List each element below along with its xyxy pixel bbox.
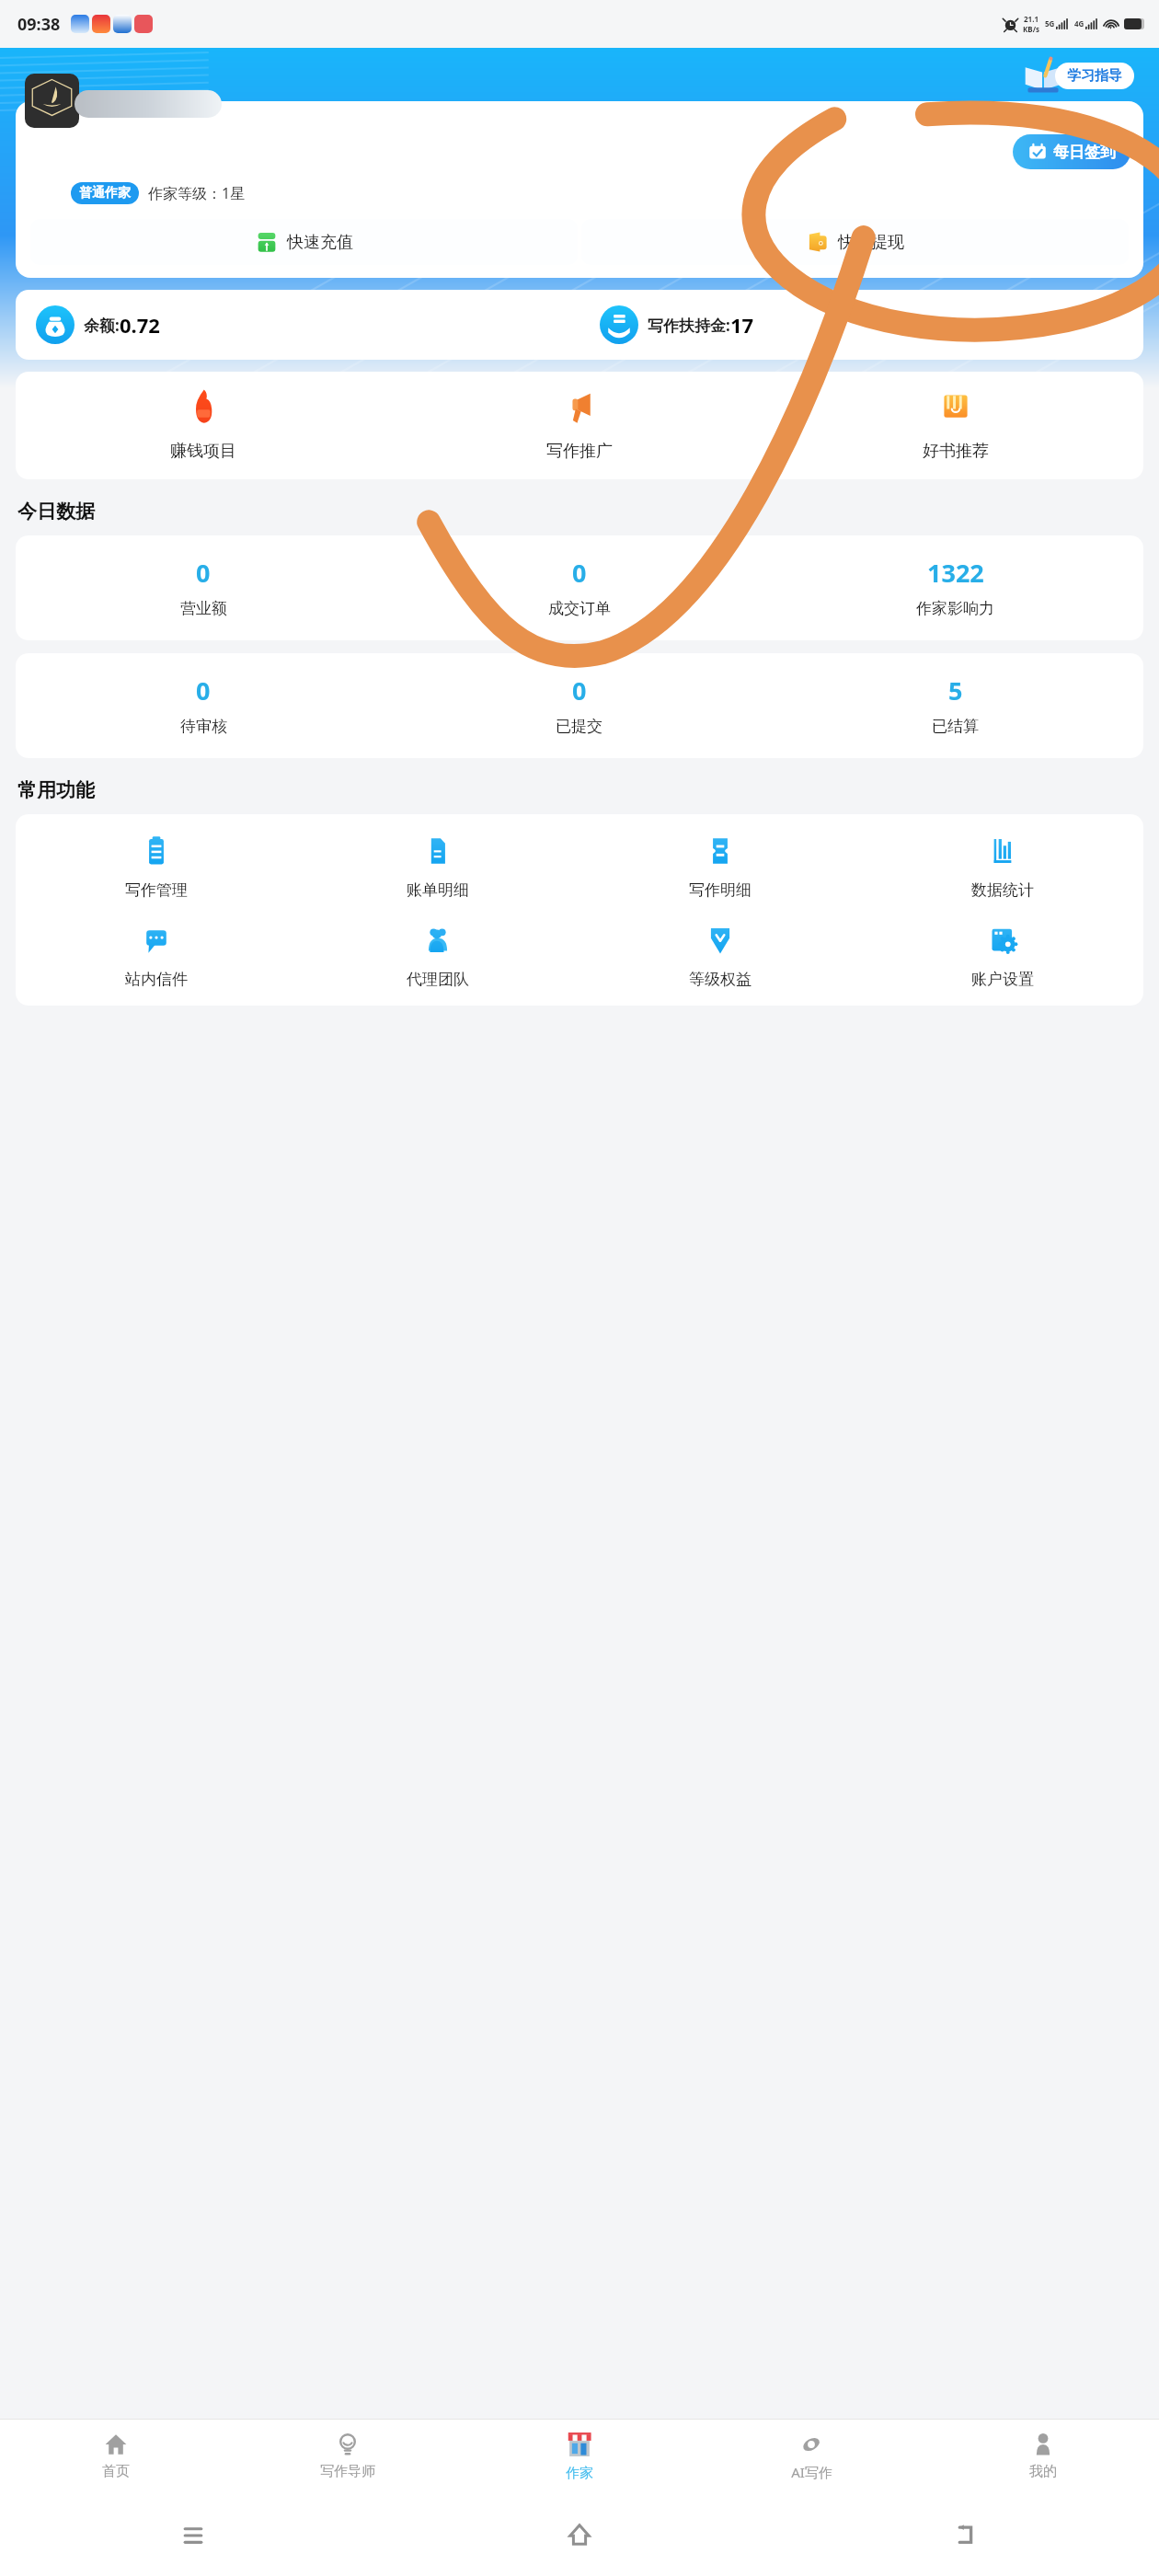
button[interactable]: AI写作 (695, 2431, 927, 2481)
staticText: 今日数据 (17, 500, 95, 523)
staticText: 0 (572, 556, 587, 590)
staticText: 账户设置 (971, 970, 1034, 989)
staticText: 0 (196, 673, 211, 707)
staticText: 站内信件 (125, 970, 188, 989)
staticText: AI写作 (791, 2463, 832, 2481)
button[interactable]: 账单明细 (297, 834, 579, 900)
button[interactable]: Recents (0, 2493, 386, 2576)
staticText: 写作明细 (689, 880, 752, 900)
button[interactable]: 快捷提现 (581, 219, 1129, 265)
button[interactable]: 赚钱项目 (16, 387, 391, 462)
button[interactable]: 0 (16, 673, 391, 736)
staticText: 写作推广 (546, 441, 613, 462)
staticText: 快速充值 (287, 232, 353, 253)
staticText: 待审核 (180, 717, 227, 736)
staticText: 代理团队 (407, 970, 469, 989)
staticText: 5G (1045, 18, 1055, 29)
staticText: 0 (196, 556, 211, 590)
staticText: 学习指导 (1067, 67, 1122, 85)
button[interactable]: 好书推荐 (767, 387, 1143, 462)
button[interactable]: 账户设置 (861, 924, 1143, 989)
button[interactable]: Home (386, 2493, 773, 2576)
button[interactable]: 等级权益 (579, 924, 861, 989)
staticText: 作家影响力 (916, 599, 994, 618)
staticText: 常用功能 (17, 778, 95, 802)
button[interactable]: 快速充值 (30, 219, 578, 265)
button[interactable]: 代理团队 (297, 924, 579, 989)
staticText: 快捷提现 (838, 232, 904, 253)
button[interactable]: 0 (391, 556, 767, 618)
button[interactable]: 数据统计 (861, 834, 1143, 900)
staticText: 写作导师 (320, 2463, 375, 2480)
staticText: 5 (948, 673, 963, 707)
button[interactable]: 0 (391, 673, 767, 736)
button[interactable]: 作家 (464, 2429, 695, 2482)
button[interactable]: 余额: (36, 305, 579, 344)
staticText: 作家 (566, 2465, 593, 2482)
button[interactable]: Avatar (25, 74, 79, 128)
button[interactable]: 写作推广 (391, 387, 767, 462)
staticText: 0.72 (120, 311, 160, 339)
button[interactable]: 站内信件 (16, 924, 297, 989)
staticText: 每日签到 (1053, 143, 1116, 162)
staticText: 好书推荐 (923, 441, 989, 462)
button[interactable]: Back (773, 2493, 1159, 2576)
button[interactable]: 0 (16, 556, 391, 618)
staticText: 0 (572, 673, 587, 707)
button[interactable]: 我的 (927, 2431, 1159, 2480)
staticText: 17 (730, 311, 754, 339)
staticText: 09:38 (17, 13, 61, 36)
staticText: 1322 (927, 556, 984, 590)
button[interactable]: 写作导师 (232, 2431, 464, 2480)
button[interactable]: 每日签到 (1013, 134, 1130, 169)
staticText: 等级权益 (689, 970, 752, 989)
staticText: 已结算 (932, 717, 979, 736)
button[interactable]: 学习指导 (1055, 63, 1134, 89)
staticText: 21.1 (1024, 14, 1039, 24)
staticText: 余额: (84, 315, 120, 336)
button[interactable]: 写作扶持金: (600, 305, 1143, 344)
button[interactable]: 写作管理 (16, 834, 297, 900)
staticText: 首页 (102, 2463, 130, 2480)
button[interactable]: 5 (767, 673, 1143, 736)
staticText: 营业额 (180, 599, 227, 618)
staticText: 我的 (1029, 2463, 1057, 2480)
staticText: 数据统计 (971, 880, 1034, 900)
staticText: 已提交 (556, 717, 602, 736)
staticText: 4G (1074, 18, 1084, 29)
staticText: 赚钱项目 (170, 441, 236, 462)
staticText: 作家等级：1星 (148, 183, 246, 203)
button[interactable]: 1322 (767, 556, 1143, 618)
staticText: 普通作家 (79, 185, 131, 201)
staticText: KB/s (1023, 24, 1039, 34)
button[interactable]: 写作明细 (579, 834, 861, 900)
staticText: 成交订单 (548, 599, 611, 618)
staticText: 账单明细 (407, 880, 469, 900)
button[interactable]: 首页 (0, 2431, 232, 2480)
staticText: 写作扶持金: (648, 315, 730, 336)
staticText: 写作管理 (125, 880, 188, 900)
